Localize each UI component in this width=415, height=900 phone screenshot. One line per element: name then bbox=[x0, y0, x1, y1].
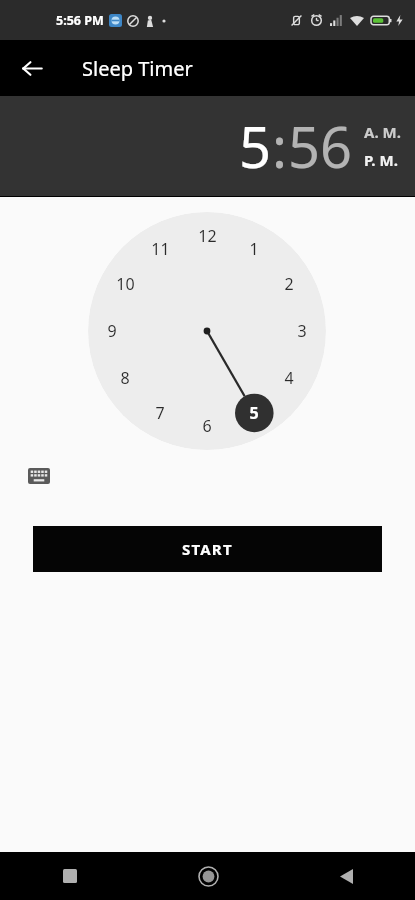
button[interactable]: START bbox=[33, 526, 382, 572]
staticText: 5 bbox=[249, 402, 259, 424]
staticText: 9 bbox=[107, 320, 117, 342]
staticText: 7 bbox=[155, 402, 165, 424]
staticText: : bbox=[272, 108, 288, 184]
button[interactable]: Switch to text input bbox=[22, 459, 56, 493]
staticText: 3 bbox=[297, 320, 307, 342]
staticText: 1 bbox=[249, 238, 259, 260]
button[interactable]: Back bbox=[277, 852, 415, 900]
button[interactable]: Recents bbox=[0, 852, 139, 900]
staticText: 10 bbox=[116, 273, 135, 295]
staticText: Sleep Timer bbox=[82, 55, 193, 82]
button[interactable]: Back bbox=[10, 46, 54, 90]
button[interactable]: Home bbox=[139, 852, 277, 900]
staticText: A. M. bbox=[364, 122, 401, 142]
staticText: 12 bbox=[198, 225, 217, 247]
staticText: P. M. bbox=[364, 150, 398, 170]
button[interactable]: P. M. bbox=[364, 150, 398, 170]
button[interactable]: 5 bbox=[239, 108, 272, 184]
staticText: 5:56 PM bbox=[56, 12, 104, 29]
staticText: 11 bbox=[151, 238, 170, 260]
button[interactable]: Clock face, hour 5 selected bbox=[88, 212, 326, 450]
staticText: 2 bbox=[284, 273, 294, 295]
staticText: 4 bbox=[284, 367, 294, 389]
button[interactable]: 56 bbox=[288, 108, 353, 184]
staticText: 6 bbox=[202, 415, 212, 437]
staticText: 8 bbox=[120, 367, 130, 389]
staticText: START bbox=[182, 539, 233, 559]
button[interactable]: A. M. bbox=[364, 122, 401, 142]
